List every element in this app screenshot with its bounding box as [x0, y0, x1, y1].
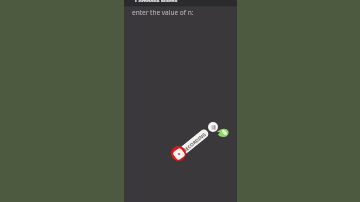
staticText: Compose Maths	[135, 0, 178, 2]
button[interactable]: Screenshot	[208, 122, 218, 132]
other: Pointer	[217, 128, 229, 137]
button[interactable]: RECORDING	[179, 128, 210, 155]
staticText: RECORDING	[182, 131, 207, 153]
button[interactable]: Stop recording	[171, 146, 186, 161]
button[interactable]: Compose Maths	[124, 0, 237, 5]
staticText: enter the value of n:	[132, 8, 194, 17]
